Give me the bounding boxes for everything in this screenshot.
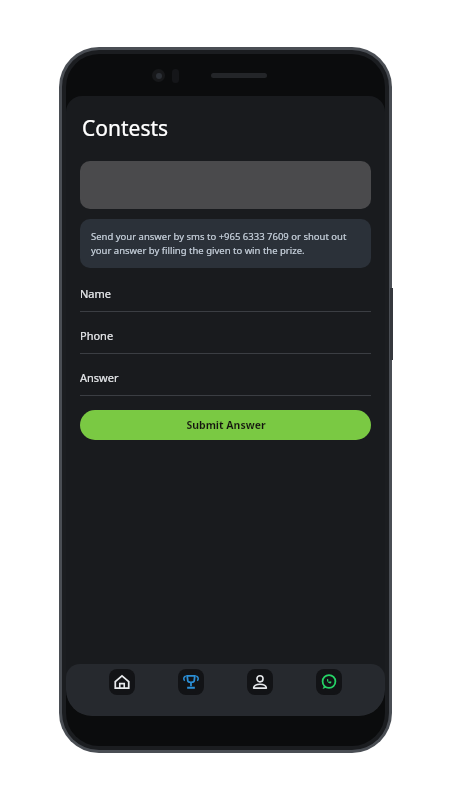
staticText: Answer xyxy=(80,370,119,385)
button[interactable]: Home xyxy=(109,669,135,695)
button[interactable] xyxy=(80,161,371,209)
staticText: Contests xyxy=(82,114,169,143)
button[interactable]: WhatsApp xyxy=(316,669,342,695)
staticText: Phone xyxy=(80,328,114,343)
staticText: Send your answer by sms to +965 6333 760… xyxy=(91,230,360,257)
button[interactable]: Profile xyxy=(247,669,273,695)
button[interactable]: Submit Answer xyxy=(80,410,371,440)
button[interactable]: Answer xyxy=(80,370,371,396)
button[interactable]: Contests xyxy=(178,669,204,695)
button[interactable]: Phone xyxy=(80,328,371,354)
staticText: Submit Answer xyxy=(186,418,266,432)
button[interactable]: Name xyxy=(80,286,371,312)
staticText: Name xyxy=(80,286,112,301)
